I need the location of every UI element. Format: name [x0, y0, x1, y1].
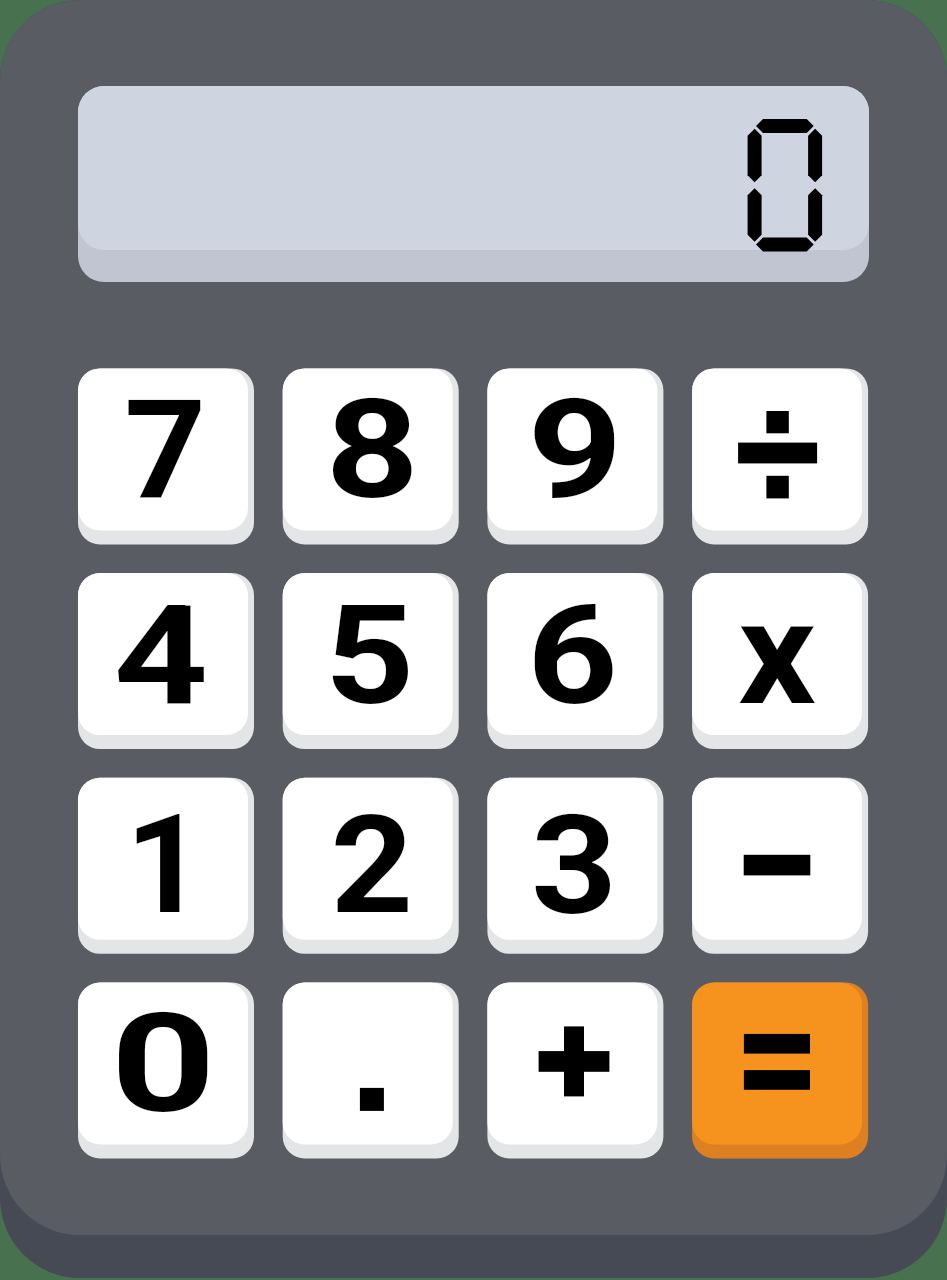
button[interactable]: Calculator: [0, 0, 947, 1280]
